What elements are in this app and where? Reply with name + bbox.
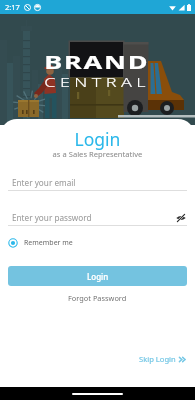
staticText: BRAND xyxy=(44,50,151,75)
staticText: Enter your password xyxy=(12,212,174,223)
staticText: as a Sales Representative xyxy=(0,149,195,159)
button[interactable]: Login xyxy=(8,266,187,286)
staticText: CENTRAL xyxy=(44,73,151,91)
button[interactable]: Forgot Password xyxy=(66,291,129,305)
button[interactable]: Skip Login xyxy=(137,352,189,366)
staticText: Skip Login xyxy=(139,354,176,364)
button[interactable]: Hide password xyxy=(174,211,187,224)
staticText: 2:17 xyxy=(5,2,20,12)
staticText: Enter your email xyxy=(12,177,187,188)
staticText: Login xyxy=(87,271,109,282)
staticText: Login xyxy=(0,127,195,151)
button[interactable]: Remember me xyxy=(8,237,73,249)
staticText: Remember me xyxy=(24,238,73,248)
